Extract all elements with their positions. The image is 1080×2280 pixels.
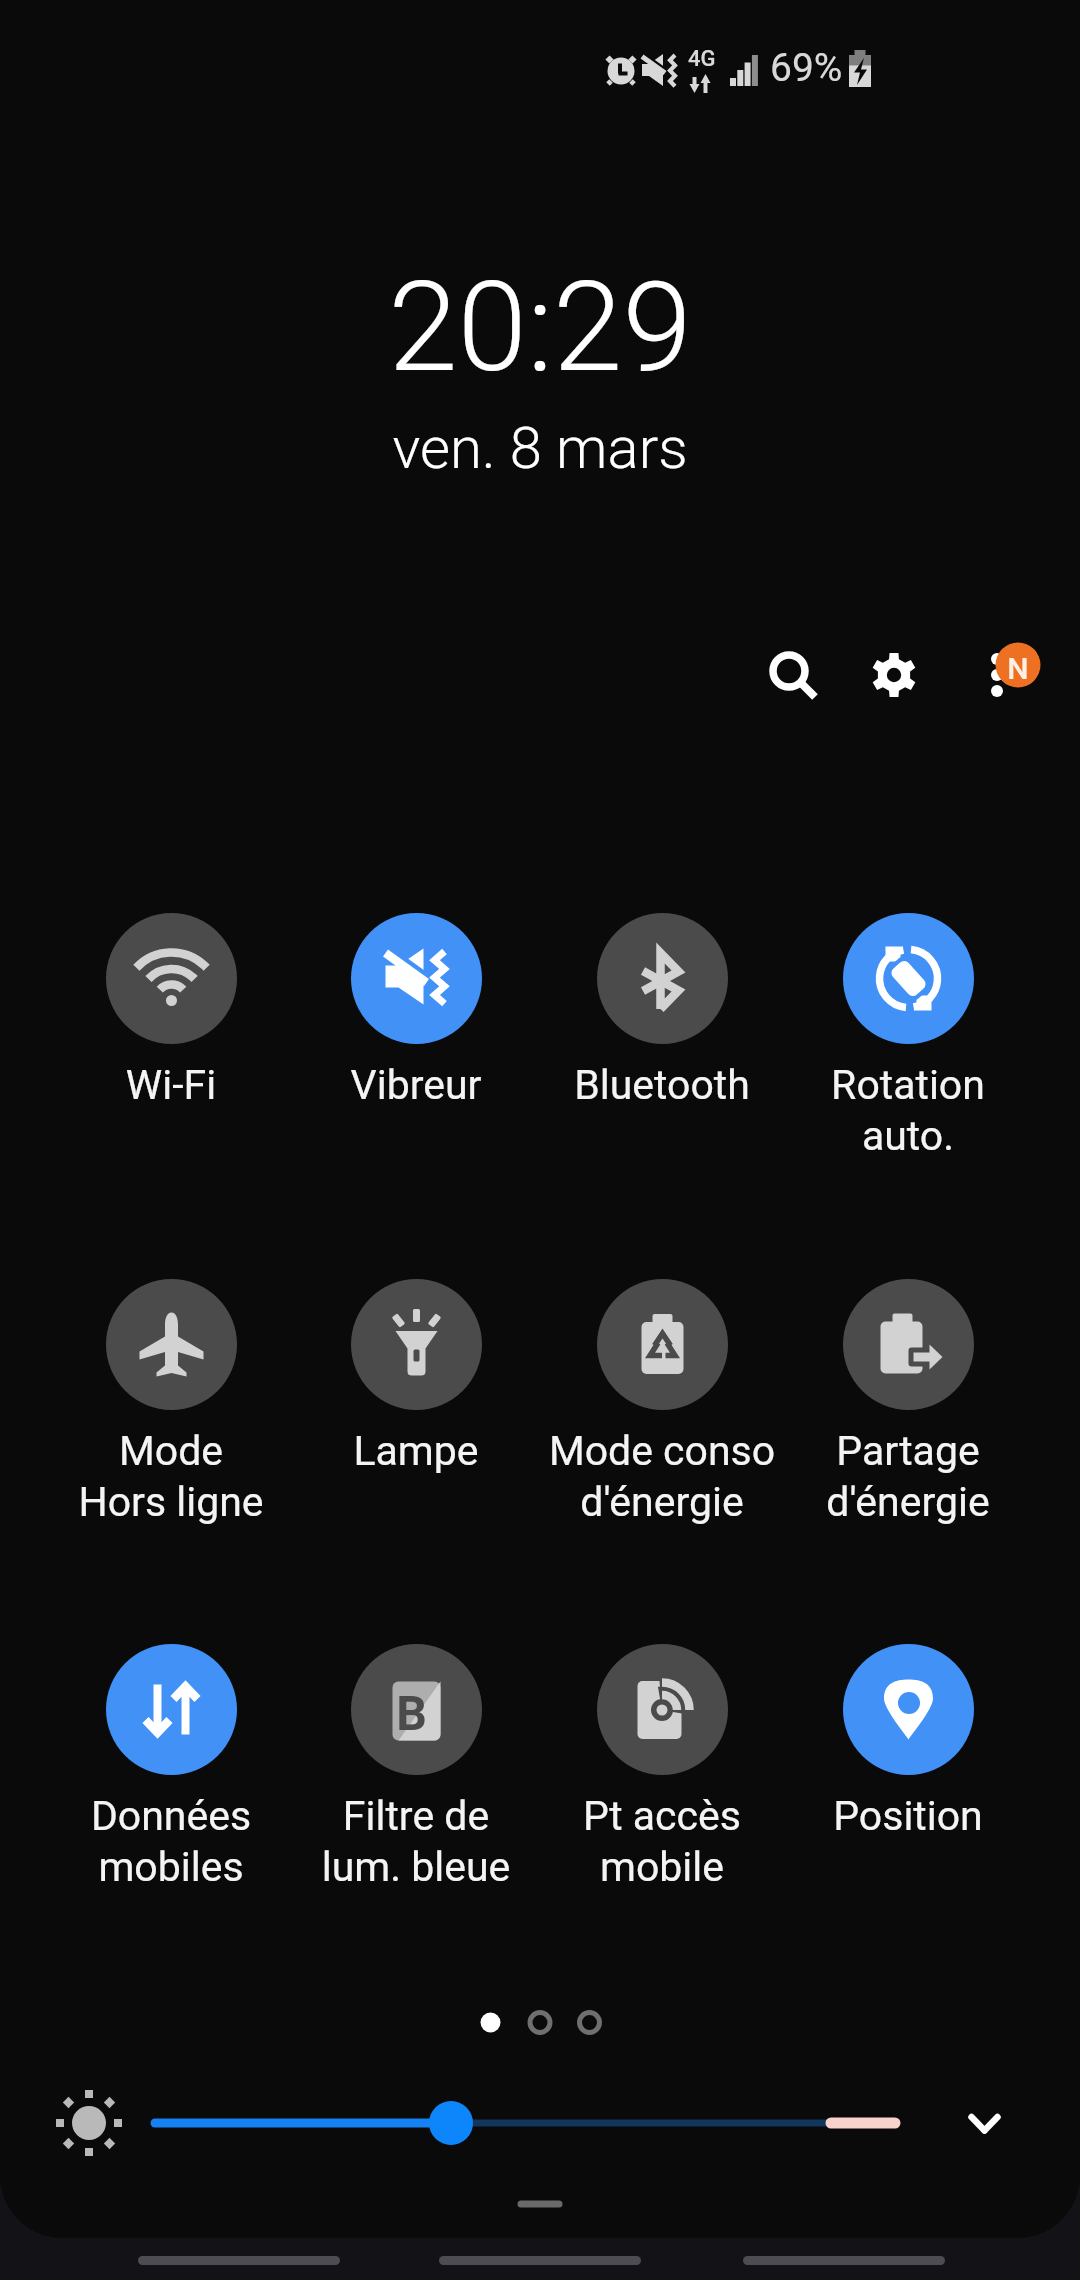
staticText: Filtre de lum. bleue [291, 1792, 541, 1891]
button[interactable]: Mode conso d'énergie [537, 1279, 787, 1526]
staticText: Données mobiles [46, 1792, 296, 1891]
button[interactable]: Données mobiles [46, 1644, 296, 1891]
staticText: Rotation auto. [783, 1061, 1033, 1160]
button[interactable]: Position [783, 1644, 1033, 1840]
button[interactable]: Home [439, 2240, 641, 2280]
staticText: Bluetooth [537, 1061, 787, 1109]
button[interactable]: Search [741, 623, 837, 719]
staticText: Mode Hors ligne [46, 1427, 296, 1526]
staticText: 4G [688, 46, 716, 72]
button[interactable]: Wi-Fi [46, 913, 296, 1109]
button[interactable]: Rotation auto. [783, 913, 1033, 1160]
button[interactable]: Settings [846, 627, 942, 723]
staticText: Wi-Fi [46, 1061, 296, 1109]
button[interactable]: Back [743, 2240, 945, 2280]
staticText: Mode conso d'énergie [537, 1427, 787, 1526]
button[interactable]: Partage d'énergie [783, 1279, 1033, 1526]
button[interactable]: Mode Hors ligne [46, 1279, 296, 1526]
staticText: Pt accès mobile [537, 1792, 787, 1891]
staticText: 20:29 [0, 254, 1080, 400]
staticText: Vibreur [291, 1061, 541, 1109]
button[interactable]: Pt accès mobile [537, 1644, 787, 1891]
staticText: B [396, 1685, 427, 1741]
button[interactable]: Bluetooth [537, 913, 787, 1109]
button[interactable]: Recents [138, 2240, 340, 2280]
button[interactable]: B [291, 1644, 541, 1891]
button[interactable]: Lampe [291, 1279, 541, 1475]
staticText: 69% [770, 45, 843, 91]
staticText: ven. 8 mars [0, 414, 1080, 482]
staticText: Partage d'énergie [783, 1427, 1033, 1526]
button[interactable]: Vibreur [291, 913, 541, 1109]
staticText: N [1007, 651, 1029, 686]
staticText: Lampe [291, 1427, 541, 1475]
button[interactable]: More options [948, 618, 1048, 718]
staticText: Position [783, 1792, 1033, 1840]
